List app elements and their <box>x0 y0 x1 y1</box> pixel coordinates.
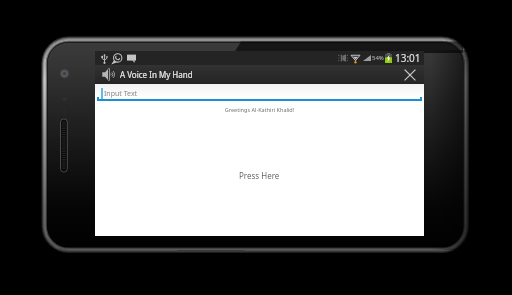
button[interactable]: Press Here <box>95 168 424 182</box>
button[interactable]: Close <box>400 65 419 84</box>
button[interactable]: Input Text <box>95 84 424 102</box>
staticText: 13:01 <box>395 51 421 65</box>
staticText: Input Text <box>104 89 138 99</box>
staticText: Press Here <box>239 170 280 181</box>
staticText: 54% <box>372 54 384 62</box>
button[interactable]: A Voice In My Hand <box>102 67 193 82</box>
staticText: Greetings Al-Kathiri Khalid! <box>95 106 424 113</box>
staticText: A Voice In My Hand <box>120 69 193 80</box>
